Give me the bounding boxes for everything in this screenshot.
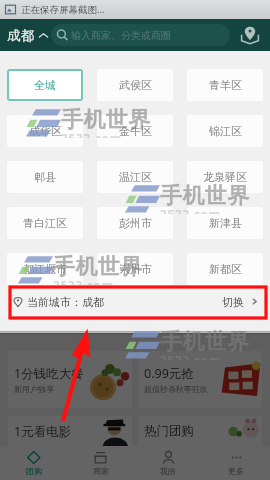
button[interactable]: 新津县 (187, 207, 263, 239)
button[interactable]: 热门团购 (138, 416, 262, 446)
button[interactable]: 郫县 (7, 161, 83, 193)
button[interactable]: 成都 (0, 21, 51, 50)
staticText: 温江区 (119, 170, 152, 184)
staticText: 新津县 (209, 216, 242, 230)
button[interactable]: 全城 (7, 69, 83, 101)
staticText: 3533.com (160, 352, 222, 360)
button[interactable]: 温江区 (97, 161, 173, 193)
button[interactable]: 金牛区 (97, 115, 173, 147)
staticText: 武侯区 (119, 78, 152, 92)
staticText: 3533.com (61, 130, 123, 138)
staticText: 新都区 (209, 262, 242, 276)
staticText: 全城 (34, 78, 56, 92)
staticText: 手机世界 (53, 253, 143, 281)
staticText: 都江堰市 (23, 262, 67, 276)
staticText: 商家 (93, 466, 109, 476)
button[interactable]: 0.99元抢 (138, 351, 262, 408)
button[interactable]: 青白江区 (7, 207, 83, 239)
staticText: 青羊区 (209, 78, 242, 92)
button[interactable]: 我的 (134, 446, 202, 480)
staticText: 青白江区 (23, 216, 67, 230)
button[interactable]: 1分钱吃大餐 (8, 351, 132, 408)
staticText: 团购 (26, 466, 42, 476)
staticText: 崇州市 (119, 262, 152, 276)
button[interactable]: 成华区 (7, 115, 83, 147)
staticText: 手机世界 (160, 328, 250, 356)
staticText: 锦江区 (209, 124, 242, 138)
staticText: 更多 (228, 466, 244, 476)
button[interactable]: 商家 (67, 446, 134, 480)
button[interactable]: 彭州市 (97, 207, 173, 239)
staticText: 成都 (7, 27, 34, 44)
staticText: 龙泉驿区 (203, 170, 247, 184)
button[interactable]: 都江堰市 (7, 253, 83, 285)
staticText: 我的 (160, 466, 176, 476)
staticText: 金牛区 (119, 124, 152, 138)
staticText: 正在保存屏幕截图... (21, 3, 105, 16)
staticText: 3533.com (160, 206, 222, 214)
staticText: 成华区 (29, 124, 62, 138)
staticText: 新用户独享 (14, 384, 54, 394)
staticText: 0.99元抢 (144, 365, 194, 382)
button[interactable]: 更多 (202, 446, 270, 480)
staticText: 手机世界 (160, 182, 250, 210)
button[interactable]: 龙泉驿区 (187, 161, 263, 193)
button[interactable]: 输入商家、分类或商圈 (51, 24, 230, 46)
button[interactable]: 团购 (0, 446, 67, 480)
button[interactable]: 锦江区 (187, 115, 263, 147)
staticText: 3533.com (53, 277, 115, 285)
staticText: 切换 (222, 295, 244, 309)
button[interactable]: 崇州市 (97, 253, 173, 285)
button[interactable]: 青羊区 (187, 69, 263, 101)
button[interactable]: 武侯区 (97, 69, 173, 101)
staticText: 输入商家、分类或商圈 (71, 29, 171, 42)
staticText: 1元看电影 (14, 423, 72, 440)
staticText: 1分钱吃大餐 (14, 365, 84, 382)
staticText: 郫县 (34, 170, 56, 184)
staticText: 当前城市：成都 (27, 295, 104, 309)
button[interactable]: 当前城市：成都 (0, 285, 270, 318)
button[interactable]: Map location (230, 19, 270, 51)
button[interactable]: 新都区 (187, 253, 263, 285)
staticText: 彭州市 (119, 216, 152, 230)
staticText: 超值秒杀秋季狂欢 (144, 384, 208, 394)
button[interactable]: 1元看电影 (8, 416, 132, 446)
staticText: 手机世界 (61, 106, 151, 134)
staticText: 热门团购 (144, 423, 194, 439)
